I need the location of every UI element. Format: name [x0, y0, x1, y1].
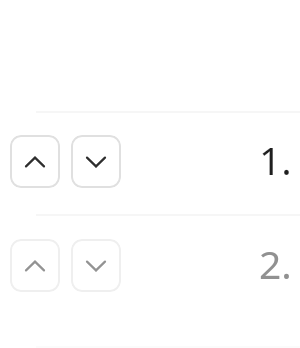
button[interactable]: Move down — [71, 239, 121, 292]
staticText: 2. — [259, 237, 292, 290]
staticText: 1. — [259, 133, 292, 186]
button[interactable]: Move down — [71, 135, 121, 188]
button[interactable] — [0, 216, 300, 318]
button[interactable]: Move up — [10, 135, 60, 188]
button[interactable]: Move up — [10, 239, 60, 292]
button[interactable] — [0, 113, 300, 215]
